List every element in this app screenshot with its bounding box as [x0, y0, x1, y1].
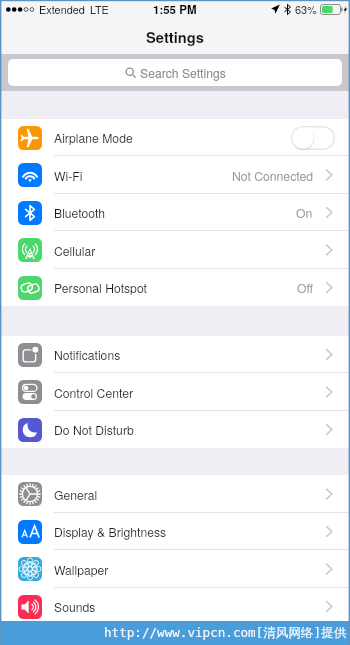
staticText: Airplane Mode	[54, 129, 133, 146]
button[interactable]: Sounds	[0, 588, 350, 625]
staticText: Extended	[39, 1, 85, 17]
staticText: Off	[297, 279, 313, 296]
staticText: Personal Hotspot	[54, 279, 147, 296]
staticText: 1:55 PM	[153, 1, 197, 17]
button[interactable]: Control Center	[0, 373, 350, 411]
staticText: http://www.vipcn.com[清风网络]提供	[104, 625, 347, 641]
staticText: Sounds	[54, 598, 96, 615]
button[interactable]: Display & Brightness	[0, 513, 350, 550]
staticText: LTE	[90, 1, 109, 17]
button[interactable]: Wi-Fi	[0, 156, 350, 194]
staticText: General	[54, 486, 98, 503]
button[interactable]: Cellular	[0, 231, 350, 269]
staticText: Display & Brightness	[54, 523, 167, 540]
button[interactable]: General	[0, 475, 350, 513]
button[interactable]: Personal Hotspot	[0, 269, 350, 306]
button[interactable]: Do Not Disturb	[0, 411, 350, 448]
staticText: Settings	[146, 26, 204, 47]
staticText: On	[296, 204, 313, 221]
staticText: Cellular	[54, 242, 96, 259]
staticText: Not Connected	[232, 167, 313, 184]
button[interactable]: Search Settings	[8, 59, 342, 86]
staticText: 63%	[295, 1, 317, 17]
staticText: Wi-Fi	[54, 167, 83, 184]
staticText: Search Settings	[140, 64, 226, 81]
staticText: Wallpaper	[54, 561, 109, 578]
button[interactable]: Bluetooth	[0, 194, 350, 231]
button[interactable]: Notifications	[0, 336, 350, 373]
staticText: Notifications	[54, 346, 121, 363]
staticText: Bluetooth	[54, 204, 106, 221]
staticText: Do Not Disturb	[54, 421, 134, 438]
button[interactable]: Airplane Mode	[0, 119, 350, 156]
staticText: Control Center	[54, 384, 133, 401]
button[interactable]: Wallpaper	[0, 550, 350, 588]
